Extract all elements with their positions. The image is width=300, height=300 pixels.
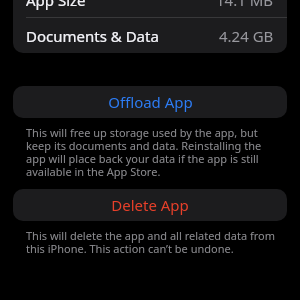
button[interactable]: Documents & Data bbox=[13, 18, 287, 53]
staticText: App Size bbox=[26, 0, 86, 10]
button[interactable]: Delete App bbox=[13, 189, 287, 221]
staticText: 14.1 MB bbox=[216, 0, 274, 10]
staticText: This will delete the app and all related… bbox=[26, 228, 283, 256]
staticText: This will free up storage used by the ap… bbox=[26, 125, 283, 179]
button[interactable]: App Size bbox=[13, 0, 287, 17]
staticText: Offload App bbox=[108, 92, 193, 112]
staticText: Delete App bbox=[111, 195, 189, 215]
button[interactable]: Offload App bbox=[13, 86, 287, 118]
staticText: Documents & Data bbox=[26, 26, 159, 46]
staticText: 4.24 GB bbox=[219, 26, 274, 46]
